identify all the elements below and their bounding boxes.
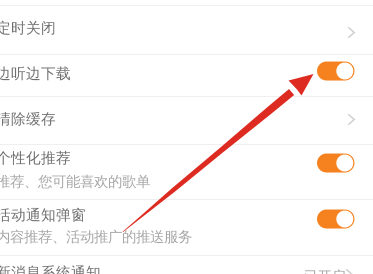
staticText: 定时关闭 [0, 19, 56, 37]
staticText: 活动通知弹窗 [0, 206, 86, 224]
button[interactable]: 定时关闭 [0, 5, 373, 54]
button[interactable]: 边听边下载 [0, 54, 373, 96]
staticText: 推荐、您可能喜欢的歌单 [0, 172, 150, 191]
staticText: 内容推荐、活动推广的推送服务 [0, 228, 192, 246]
button[interactable]: 活动通知弹窗 [0, 199, 373, 255]
staticText: 清除缓存 [0, 110, 56, 128]
staticText: 已开启 [303, 267, 345, 274]
staticText: 个性化推荐 [0, 149, 71, 167]
staticText: 新消息系统通知 [0, 263, 101, 274]
button[interactable]: 新消息系统通知 [0, 255, 373, 274]
button[interactable]: 清除缓存 [0, 96, 373, 144]
staticText: 边听边下载 [0, 64, 71, 83]
button[interactable]: 个性化推荐 [0, 144, 373, 199]
